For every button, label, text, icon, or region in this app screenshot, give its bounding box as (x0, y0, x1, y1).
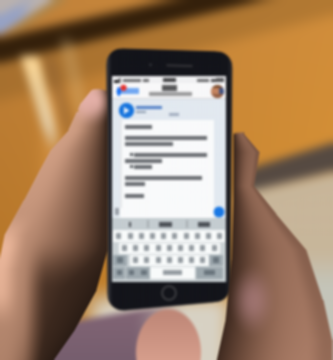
button[interactable]: Hands holding a phone showing a chat con… (0, 0, 333, 360)
